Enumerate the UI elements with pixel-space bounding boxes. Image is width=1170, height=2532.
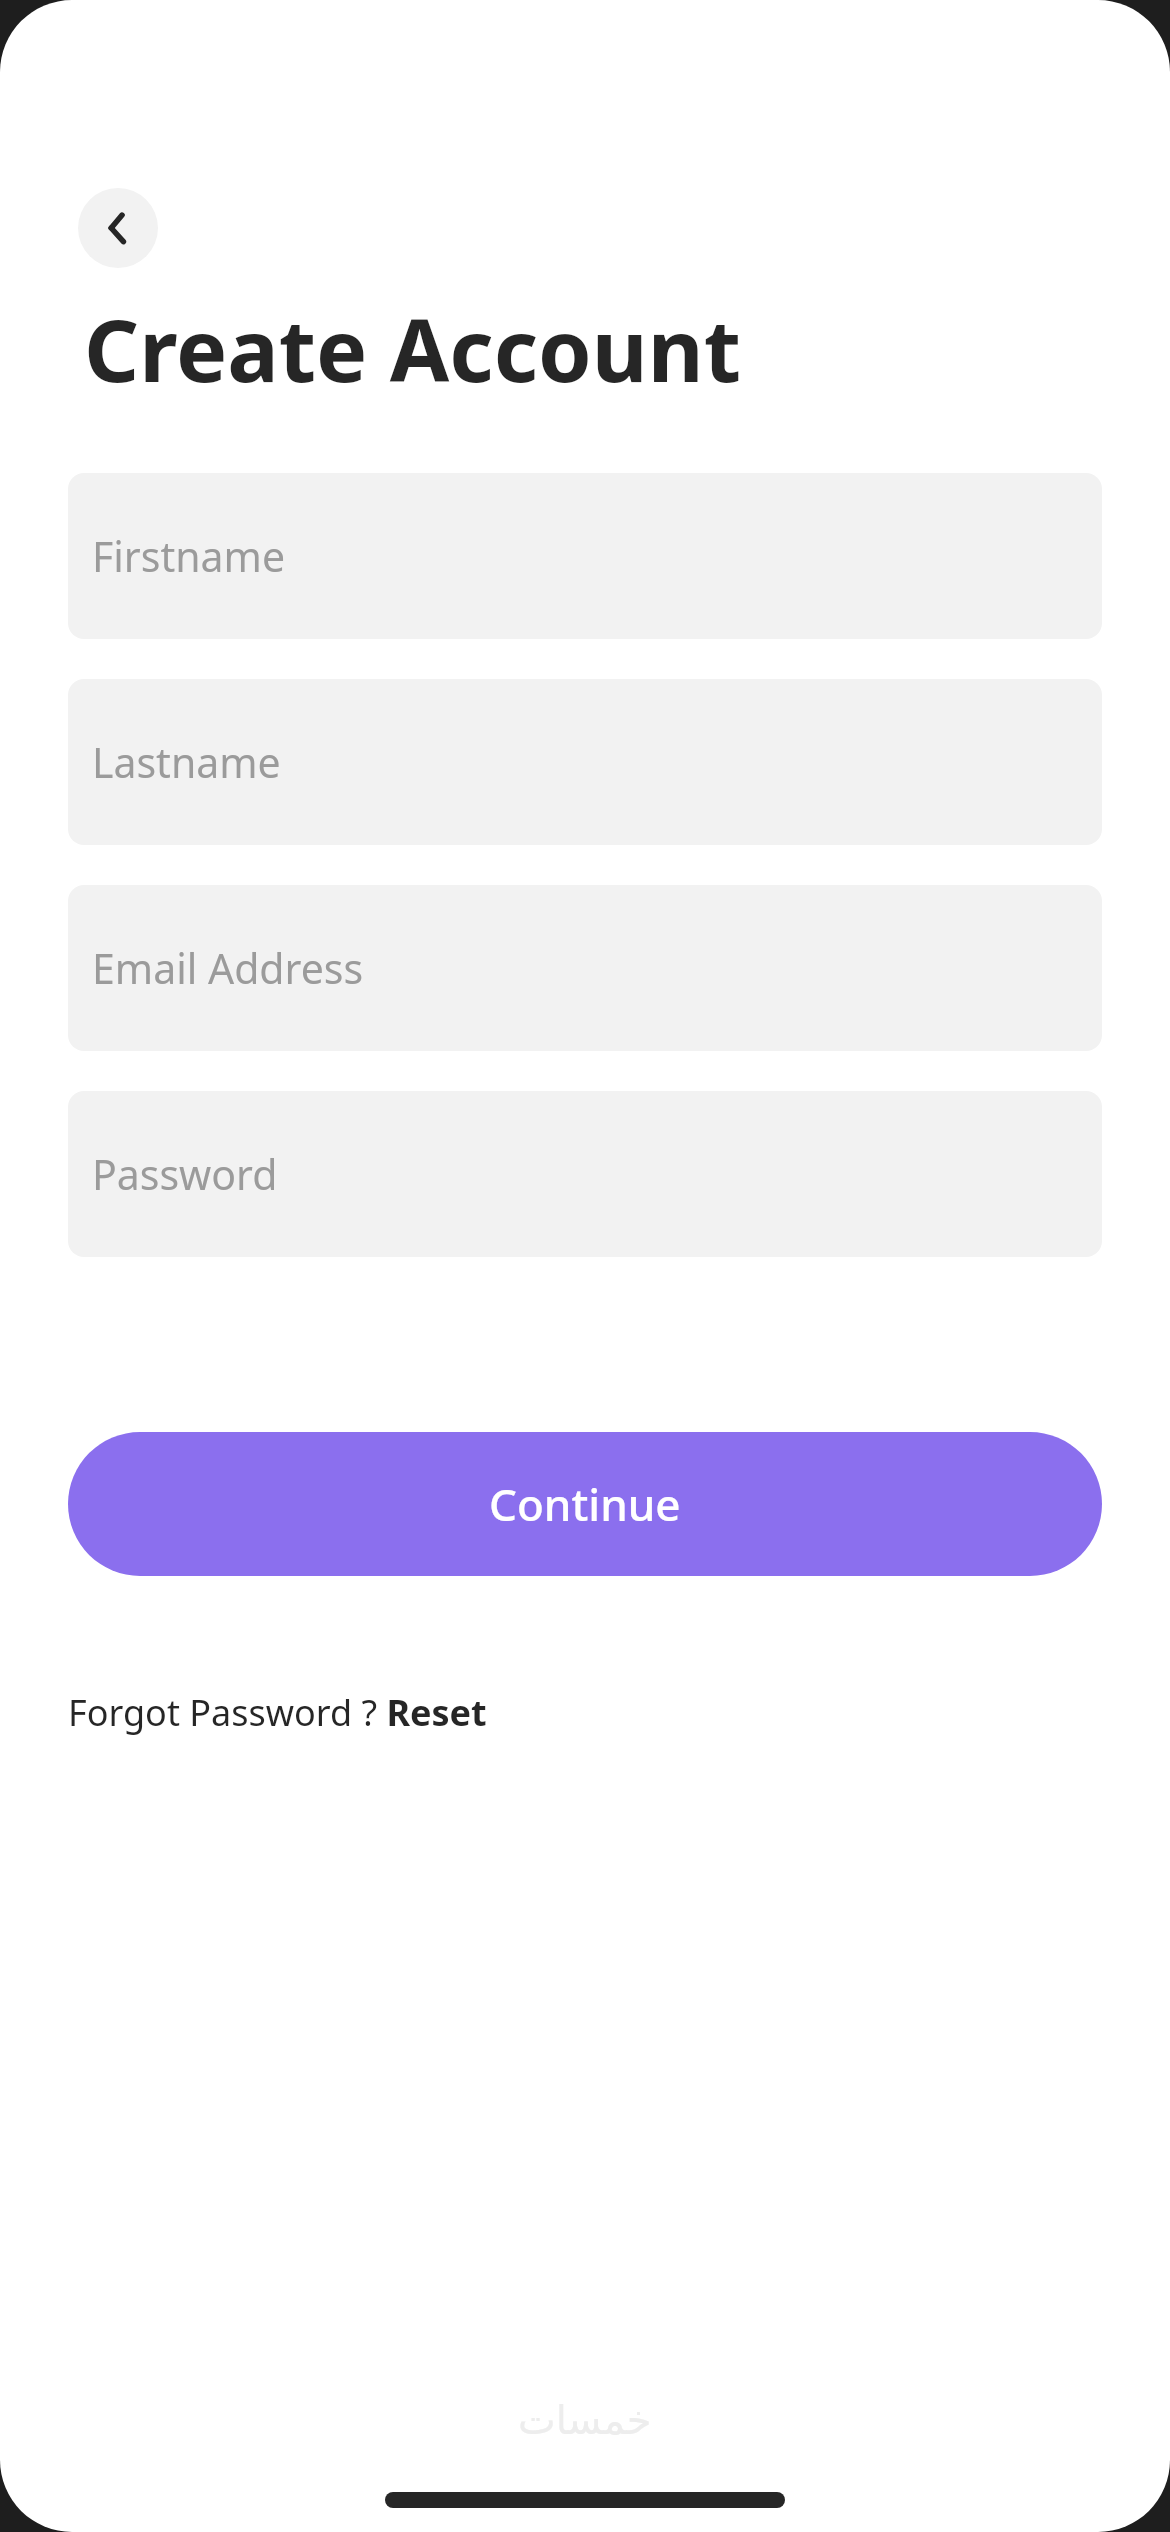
staticText: Forgot Password ? Reset <box>68 1688 487 1737</box>
button[interactable]: Email Address <box>68 885 1102 1051</box>
button[interactable]: Firstname <box>68 473 1102 639</box>
staticText: Password <box>92 1146 278 1202</box>
button[interactable]: Back <box>78 188 158 268</box>
staticText: Continue <box>489 1474 681 1534</box>
button[interactable]: Lastname <box>68 679 1102 845</box>
staticText: Firstname <box>92 528 286 584</box>
staticText: Create Account <box>84 290 741 407</box>
button[interactable]: Continue <box>68 1432 1102 1576</box>
staticText: Lastname <box>92 734 281 790</box>
staticText: Email Address <box>92 940 364 996</box>
staticText: خمسات <box>518 2397 652 2444</box>
button[interactable]: Password <box>68 1091 1102 1257</box>
button[interactable]: Forgot Password ? Reset <box>68 1688 487 1737</box>
